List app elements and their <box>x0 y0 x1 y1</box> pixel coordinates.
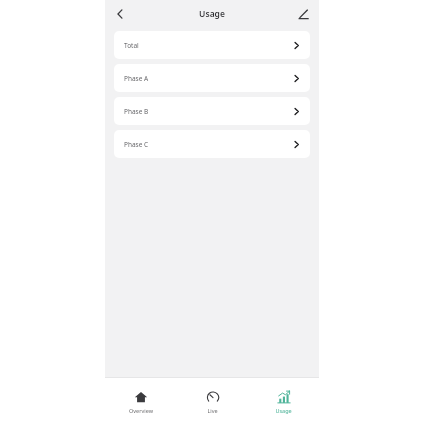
button[interactable]: Phase C <box>114 130 310 158</box>
staticText: Phase B <box>124 107 292 116</box>
staticText: Phase A <box>124 74 292 83</box>
staticText: Total <box>124 41 292 50</box>
button[interactable]: Phase A <box>114 64 310 92</box>
button[interactable]: Phase B <box>114 97 310 125</box>
staticText: Usage <box>275 407 292 414</box>
staticText: Phase C <box>124 140 292 149</box>
button[interactable]: Edit <box>292 3 314 25</box>
staticText: Live <box>207 407 218 414</box>
staticText: Usage <box>199 8 225 20</box>
staticText: Overview <box>129 407 153 414</box>
button[interactable]: Usage <box>248 378 319 426</box>
button[interactable]: Back <box>109 3 131 25</box>
button[interactable]: Live <box>177 378 248 426</box>
button[interactable]: Total <box>114 31 310 59</box>
button[interactable]: Overview <box>105 378 177 426</box>
